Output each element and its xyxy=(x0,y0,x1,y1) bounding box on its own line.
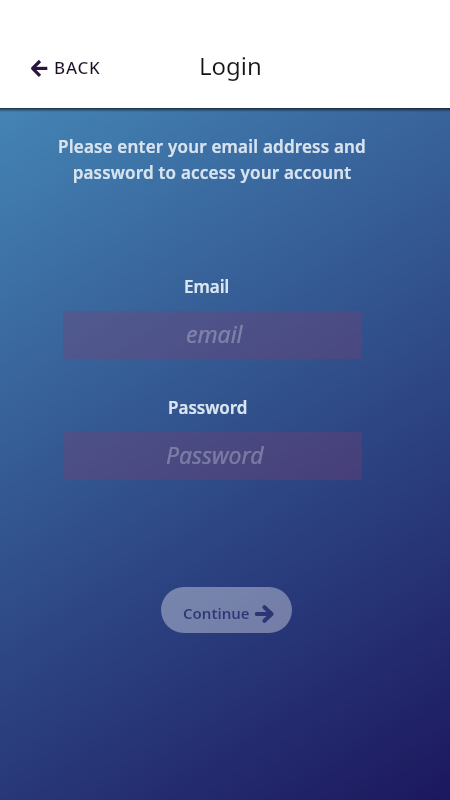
button[interactable]: Continue xyxy=(161,587,292,633)
staticText: Password xyxy=(168,396,248,419)
button[interactable]: email xyxy=(63,311,362,359)
button[interactable]: Password xyxy=(63,432,362,480)
staticText: Login xyxy=(199,49,262,82)
staticText: email xyxy=(186,318,243,349)
staticText: BACK xyxy=(54,56,101,79)
staticText: Please enter your email address and pass… xyxy=(57,135,367,184)
staticText: Continue xyxy=(183,603,250,623)
staticText: Password xyxy=(166,439,264,470)
staticText: Email xyxy=(184,275,230,298)
button[interactable]: Back xyxy=(26,50,110,84)
